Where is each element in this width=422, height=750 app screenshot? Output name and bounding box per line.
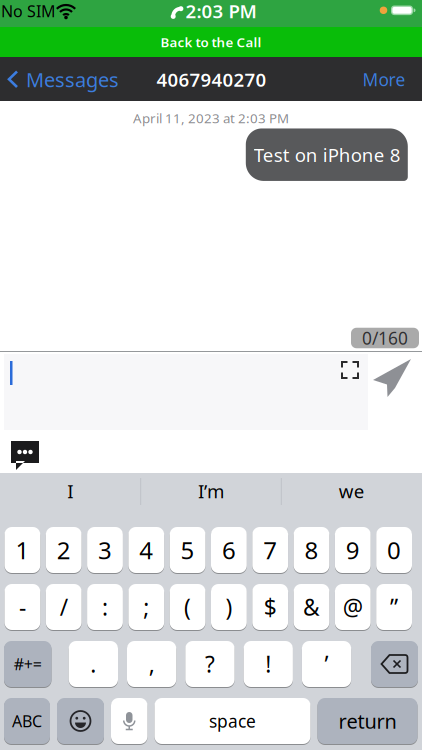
button[interactable]: I xyxy=(1,467,139,515)
staticText: 3 xyxy=(98,534,112,566)
button[interactable]: 1 xyxy=(4,526,40,573)
staticText: More xyxy=(362,68,405,91)
staticText: - xyxy=(19,592,26,622)
staticText: 6 xyxy=(222,534,236,566)
staticText: . xyxy=(90,649,96,679)
button[interactable]: More xyxy=(362,68,405,91)
button[interactable]: space xyxy=(154,697,310,744)
button[interactable]: 7 xyxy=(252,526,288,573)
staticText: No SIM xyxy=(1,0,56,22)
staticText: ” xyxy=(390,592,398,622)
button[interactable] xyxy=(4,354,368,430)
staticText: 8 xyxy=(304,534,318,566)
staticText: ) xyxy=(225,592,232,622)
button[interactable]: ) xyxy=(211,583,247,630)
button[interactable]: ABC xyxy=(4,697,50,744)
staticText: : xyxy=(102,592,108,622)
button[interactable]: return xyxy=(317,697,417,744)
staticText: 9 xyxy=(346,534,360,566)
staticText: Back to the Call xyxy=(160,33,261,51)
staticText: , xyxy=(149,649,155,679)
button[interactable] xyxy=(341,361,359,379)
staticText: 4 xyxy=(139,534,153,566)
button[interactable] xyxy=(57,697,104,744)
button[interactable]: #+= xyxy=(4,640,51,687)
button[interactable]: we xyxy=(283,467,421,515)
staticText: ( xyxy=(184,592,191,622)
staticText: April 11, 2023 at 2:03 PM xyxy=(133,109,289,127)
staticText: 0 xyxy=(387,534,401,566)
staticText: Test on iPhone 8 xyxy=(254,142,401,167)
button[interactable]: 8 xyxy=(294,526,329,573)
button[interactable]: : xyxy=(87,583,123,630)
button[interactable]: @ xyxy=(335,583,371,630)
staticText: 0/160 xyxy=(362,326,408,349)
staticText: 2 xyxy=(57,534,71,566)
staticText: $ xyxy=(264,592,277,622)
button[interactable]: $ xyxy=(252,583,288,630)
staticText: #+= xyxy=(14,653,42,675)
staticText: ? xyxy=(205,649,215,679)
button[interactable]: Back to the Call xyxy=(0,27,422,57)
staticText: 1 xyxy=(15,534,29,566)
staticText: 4067940270 xyxy=(156,67,266,92)
button[interactable]: . xyxy=(69,640,118,687)
button[interactable]: 6 xyxy=(211,526,247,573)
button[interactable]: & xyxy=(294,583,329,630)
staticText: ; xyxy=(143,592,149,622)
button[interactable]: 4 xyxy=(128,526,164,573)
staticText: ’ xyxy=(324,649,328,679)
button[interactable]: 9 xyxy=(335,526,371,573)
button[interactable] xyxy=(371,640,418,687)
button[interactable]: - xyxy=(4,583,40,630)
button[interactable]: ! xyxy=(244,640,293,687)
staticText: @ xyxy=(343,592,363,622)
button[interactable]: Messages xyxy=(7,66,119,93)
button[interactable]: I’m xyxy=(142,467,280,515)
staticText: 2:03 PM xyxy=(185,0,256,23)
button[interactable] xyxy=(11,441,39,471)
button[interactable]: ( xyxy=(170,583,205,630)
staticText: ABC xyxy=(12,710,42,732)
staticText: I’m xyxy=(198,479,224,503)
staticText: we xyxy=(339,479,365,503)
button[interactable]: 2 xyxy=(46,526,82,573)
button[interactable]: , xyxy=(127,640,176,687)
button[interactable]: ” xyxy=(376,583,412,630)
button[interactable]: 0 xyxy=(376,526,412,573)
button[interactable]: ; xyxy=(128,583,164,630)
staticText: space xyxy=(209,709,256,732)
button[interactable]: 5 xyxy=(170,526,205,573)
staticText: 7 xyxy=(263,534,277,566)
staticText: 5 xyxy=(181,534,195,566)
staticText: & xyxy=(303,592,320,622)
button[interactable] xyxy=(111,697,147,744)
staticText: return xyxy=(338,708,396,734)
staticText: Messages xyxy=(26,66,119,93)
button[interactable]: / xyxy=(46,583,82,630)
staticText: I xyxy=(67,479,73,503)
button[interactable]: ? xyxy=(185,640,235,687)
staticText: / xyxy=(60,592,68,622)
button[interactable]: 3 xyxy=(87,526,123,573)
staticText: ! xyxy=(265,649,271,679)
button[interactable] xyxy=(373,357,413,399)
button[interactable]: ’ xyxy=(302,640,351,687)
